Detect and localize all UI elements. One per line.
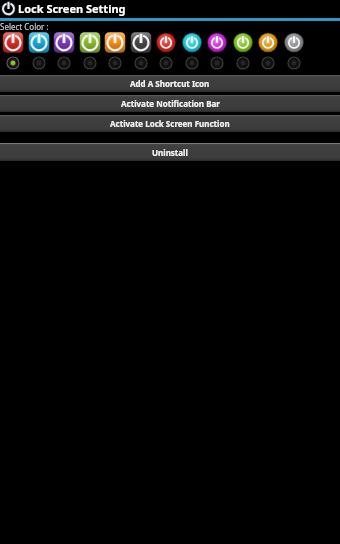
staticText: Uninstall [152,147,188,158]
button[interactable]: Select Green round [230,56,256,70]
button[interactable]: Red [0,32,26,53]
staticText: Select Color : [0,21,49,32]
button[interactable]: Select Orange [102,56,128,70]
button[interactable]: Select Gold round [255,56,281,70]
button[interactable]: Select Red [0,56,26,70]
staticText: Activate Notification Bar [121,98,220,109]
button[interactable]: Select Grey round [281,56,307,70]
other: App icon [0,0,17,17]
button[interactable]: Green round [230,32,256,53]
button[interactable]: Select Red round [153,56,179,70]
button[interactable]: Blue [26,32,52,53]
button[interactable]: Gold round [255,32,281,53]
staticText: Add A Shortcut Icon [130,78,210,89]
button[interactable]: Add A Shortcut Icon [0,75,340,92]
button[interactable]: Purple [51,32,77,53]
button[interactable]: Select Blue [26,56,52,70]
button[interactable]: Red round [153,32,179,53]
button[interactable]: Green [77,32,103,53]
button[interactable]: Grey [128,32,154,53]
button[interactable]: Select Cyan round [179,56,205,70]
staticText: Lock Screen Setting [18,1,126,16]
button[interactable]: Magenta round [204,32,230,53]
button[interactable]: Activate Lock Screen Function [0,115,340,132]
button[interactable]: Select Magenta round [204,56,230,70]
button[interactable]: Activate Notification Bar [0,95,340,112]
button[interactable]: Orange [102,32,128,53]
button[interactable]: Cyan round [179,32,205,53]
button[interactable]: Uninstall [0,143,340,161]
button[interactable]: Select Grey [128,56,154,70]
button[interactable]: Grey round [281,32,307,53]
button[interactable]: Select Purple [51,56,77,70]
button[interactable]: Select Green [77,56,103,70]
staticText: Activate Lock Screen Function [110,118,230,129]
